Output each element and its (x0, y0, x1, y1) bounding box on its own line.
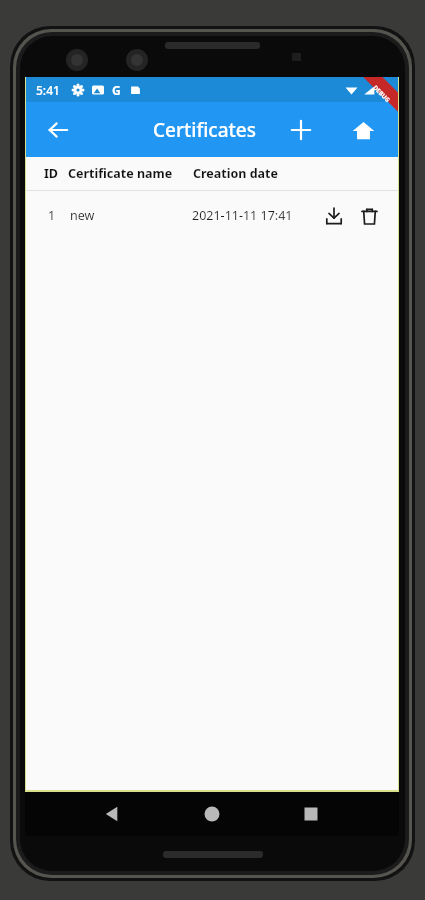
button[interactable]: Delete certificate (352, 199, 386, 233)
button[interactable]: Back (95, 796, 131, 832)
button[interactable]: Recent apps (293, 796, 329, 832)
button[interactable]: Add certificate (279, 108, 323, 152)
staticText: 2021-11-11 17:41 (192, 207, 293, 224)
staticText: Creation date (193, 165, 278, 182)
button[interactable]: Download certificate (317, 199, 351, 233)
button[interactable]: Home (341, 108, 385, 152)
staticText: ID (44, 165, 59, 182)
staticText: Certificate name (68, 165, 173, 182)
other: Navigation bar (25, 792, 399, 836)
staticText: 5:41 (36, 82, 60, 98)
button[interactable]: Home (194, 796, 230, 832)
button[interactable]: 1 (26, 191, 398, 240)
button[interactable]: Navigate back (36, 108, 80, 152)
staticText: new (70, 207, 95, 224)
staticText: Certificates (153, 117, 256, 143)
staticText: 1 (48, 207, 56, 224)
staticText: DEBUG (371, 84, 392, 104)
staticText: G (112, 82, 121, 98)
